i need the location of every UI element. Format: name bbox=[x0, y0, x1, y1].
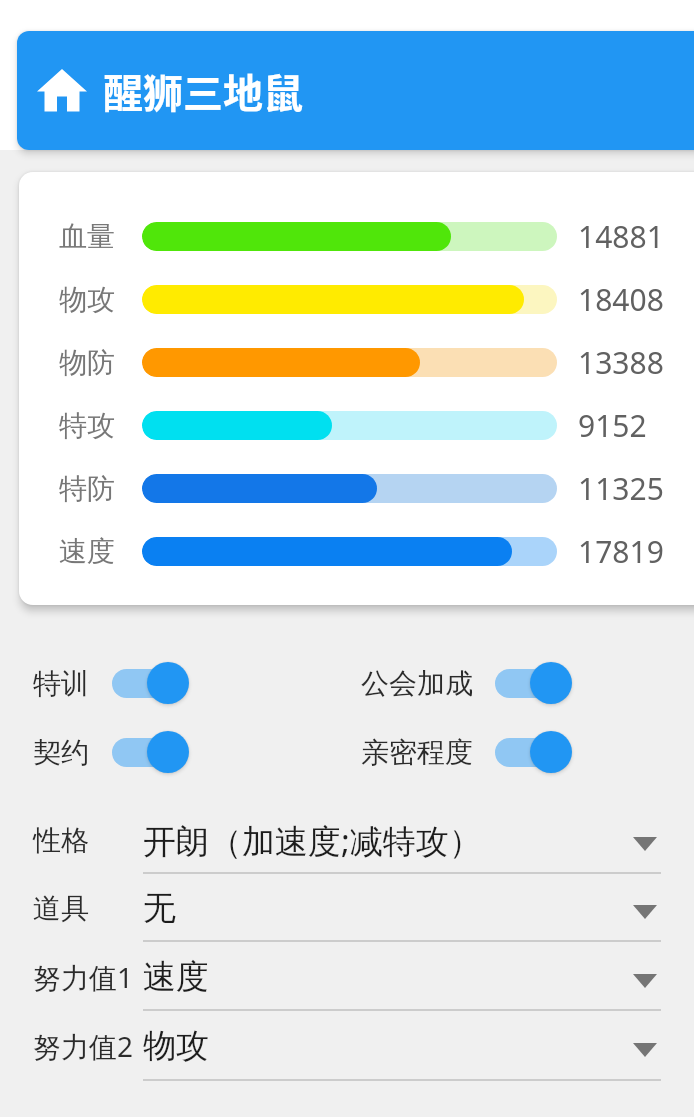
button[interactable] bbox=[112, 661, 189, 705]
staticText: 特防 bbox=[19, 471, 115, 506]
staticText: 物攻 bbox=[143, 1025, 209, 1067]
staticText: 无 bbox=[143, 887, 176, 929]
button[interactable]: 醒狮三地鼠 bbox=[17, 31, 694, 150]
button[interactable]: 努力值1 bbox=[0, 942, 694, 1011]
staticText: 物防 bbox=[19, 345, 115, 380]
staticText: 性格 bbox=[33, 823, 89, 858]
staticText: 特训 bbox=[33, 666, 89, 701]
staticText: 11325 bbox=[578, 468, 664, 509]
staticText: 醒狮三地鼠 bbox=[103, 62, 303, 120]
button[interactable] bbox=[112, 730, 189, 774]
staticText: 9152 bbox=[578, 405, 647, 446]
staticText: 18408 bbox=[578, 279, 664, 320]
staticText: 契约 bbox=[33, 735, 89, 770]
staticText: 17819 bbox=[578, 531, 664, 572]
staticText: 亲密程度 bbox=[361, 735, 473, 770]
staticText: 开朗（加速度;减特攻） bbox=[143, 818, 482, 863]
staticText: 速度 bbox=[19, 534, 115, 569]
button[interactable]: 努力值2 bbox=[0, 1011, 694, 1081]
button[interactable]: 性格 bbox=[0, 806, 694, 874]
staticText: 13388 bbox=[578, 342, 664, 383]
staticText: 公会加成 bbox=[361, 666, 473, 701]
staticText: 努力值1 bbox=[33, 958, 134, 996]
staticText: 血量 bbox=[19, 219, 115, 254]
staticText: 物攻 bbox=[19, 282, 115, 317]
staticText: 速度 bbox=[143, 956, 209, 998]
button[interactable]: 道具 bbox=[0, 874, 694, 942]
staticText: 特攻 bbox=[19, 408, 115, 443]
staticText: 努力值2 bbox=[33, 1027, 134, 1065]
staticText: 道具 bbox=[33, 891, 89, 926]
button[interactable] bbox=[495, 661, 572, 705]
button[interactable] bbox=[495, 730, 572, 774]
staticText: 14881 bbox=[578, 216, 664, 257]
